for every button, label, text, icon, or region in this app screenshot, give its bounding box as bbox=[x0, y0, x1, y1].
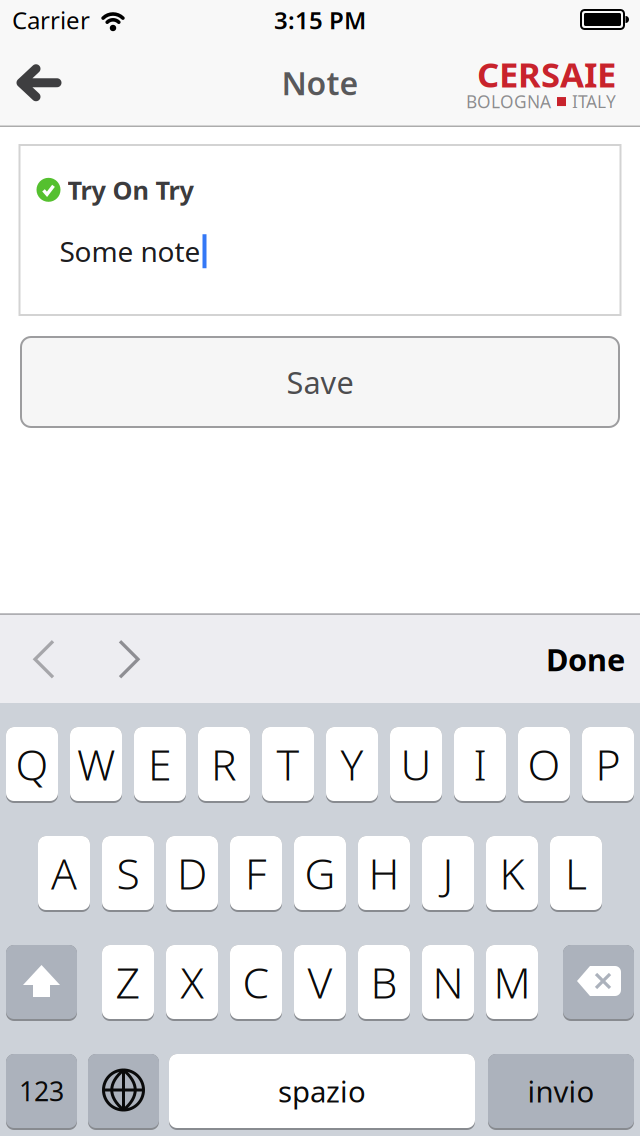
button[interactable]: Try On Try bbox=[18, 144, 621, 316]
staticText: J bbox=[442, 845, 453, 901]
staticText: O bbox=[527, 736, 560, 792]
staticText: M bbox=[493, 954, 530, 1010]
staticText: invio bbox=[527, 1071, 594, 1110]
staticText: P bbox=[595, 736, 620, 792]
staticText: Try On Try bbox=[67, 173, 193, 207]
staticText: Q bbox=[15, 736, 48, 792]
staticText: G bbox=[304, 845, 335, 901]
button[interactable]: L bbox=[550, 836, 602, 912]
staticText: 3:15 PM bbox=[274, 4, 366, 36]
button[interactable]: Shift bbox=[6, 945, 77, 1021]
button[interactable]: G bbox=[294, 836, 346, 912]
button[interactable]: C bbox=[230, 945, 282, 1021]
button[interactable]: Q bbox=[6, 727, 58, 803]
button[interactable]: E bbox=[134, 727, 186, 803]
staticText: U bbox=[400, 736, 431, 792]
staticText: Note bbox=[281, 61, 358, 104]
button[interactable]: X bbox=[166, 945, 218, 1021]
button[interactable]: Next field bbox=[55, 617, 140, 701]
button[interactable]: V bbox=[294, 945, 346, 1021]
button[interactable]: A bbox=[38, 836, 90, 912]
button[interactable]: M bbox=[486, 945, 538, 1021]
staticText: D bbox=[177, 845, 207, 901]
button[interactable]: Save bbox=[20, 336, 620, 428]
staticText: X bbox=[180, 954, 203, 1010]
button[interactable]: N bbox=[422, 945, 474, 1021]
button[interactable]: D bbox=[166, 836, 218, 912]
button[interactable]: H bbox=[358, 836, 410, 912]
button[interactable]: F bbox=[230, 836, 282, 912]
button[interactable]: invio bbox=[488, 1054, 634, 1130]
staticText: B bbox=[370, 954, 397, 1010]
staticText: L bbox=[565, 845, 587, 901]
staticText: Save bbox=[286, 362, 353, 402]
button[interactable]: O bbox=[518, 727, 570, 803]
staticText: ITALY bbox=[572, 90, 616, 113]
staticText: C bbox=[242, 954, 269, 1010]
button[interactable]: R bbox=[198, 727, 250, 803]
staticText: R bbox=[211, 736, 237, 792]
button[interactable]: Back bbox=[0, 44, 62, 122]
staticText: BOLOGNA bbox=[466, 90, 551, 113]
button[interactable]: Previous field bbox=[0, 617, 55, 701]
staticText: E bbox=[148, 736, 172, 792]
staticText: S bbox=[116, 845, 139, 901]
button[interactable]: W bbox=[70, 727, 122, 803]
button[interactable]: T bbox=[262, 727, 314, 803]
button[interactable]: I bbox=[454, 727, 506, 803]
button[interactable]: Y bbox=[326, 727, 378, 803]
button[interactable]: K bbox=[486, 836, 538, 912]
staticText: Z bbox=[115, 954, 140, 1010]
staticText: 123 bbox=[19, 1073, 64, 1109]
button[interactable]: Done bbox=[546, 615, 640, 704]
staticText: CERSAIE bbox=[477, 51, 616, 97]
staticText: I bbox=[473, 736, 486, 792]
button[interactable]: P bbox=[582, 727, 634, 803]
staticText: K bbox=[499, 845, 524, 901]
staticText: V bbox=[307, 954, 332, 1010]
button[interactable]: Z bbox=[102, 945, 154, 1021]
staticText: T bbox=[276, 736, 299, 792]
button[interactable]: Next keyboard bbox=[88, 1054, 159, 1130]
staticText: Carrier bbox=[12, 4, 90, 36]
staticText: N bbox=[432, 954, 463, 1010]
staticText: Done bbox=[546, 639, 625, 680]
button[interactable]: Delete bbox=[563, 945, 634, 1021]
button[interactable]: J bbox=[422, 836, 474, 912]
staticText: spazio bbox=[278, 1071, 366, 1110]
staticText: Some note bbox=[59, 233, 200, 270]
button[interactable]: S bbox=[102, 836, 154, 912]
staticText: A bbox=[51, 845, 77, 901]
staticText: F bbox=[245, 845, 267, 901]
button[interactable]: U bbox=[390, 727, 442, 803]
button[interactable]: B bbox=[358, 945, 410, 1021]
button[interactable]: spazio bbox=[169, 1054, 475, 1130]
button[interactable]: 123 bbox=[6, 1054, 77, 1130]
staticText: H bbox=[368, 845, 399, 901]
staticText: W bbox=[77, 736, 115, 792]
staticText: Y bbox=[340, 736, 363, 792]
